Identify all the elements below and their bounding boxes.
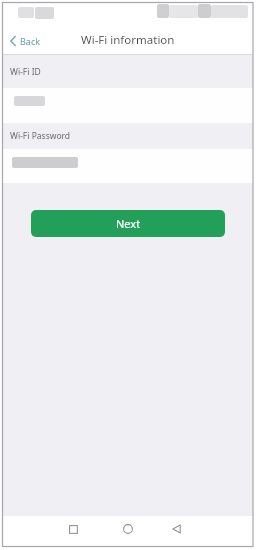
staticText: Wi-Fi ID bbox=[10, 66, 41, 78]
button[interactable] bbox=[3, 88, 253, 123]
staticText: Next bbox=[116, 216, 141, 231]
staticText: Wi-Fi information bbox=[81, 32, 175, 48]
button[interactable]: Next bbox=[31, 210, 225, 237]
staticText: Wi-Fi Password bbox=[10, 130, 71, 142]
button[interactable] bbox=[64, 520, 83, 538]
staticText: Back bbox=[20, 35, 41, 47]
button[interactable] bbox=[118, 520, 137, 538]
button[interactable] bbox=[3, 149, 253, 183]
button[interactable]: Back bbox=[7, 33, 44, 49]
button[interactable] bbox=[167, 520, 186, 538]
